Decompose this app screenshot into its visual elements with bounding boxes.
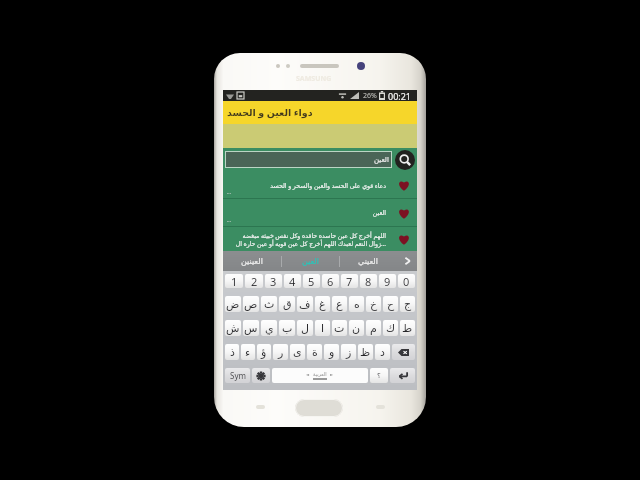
staticText: 6 [327, 274, 334, 288]
staticText: ك [386, 322, 396, 335]
button[interactable]: ع [332, 296, 347, 312]
staticText: خ [370, 298, 378, 311]
staticText: العين [372, 209, 386, 216]
button[interactable]: ◄ [272, 368, 368, 383]
staticText: ف [299, 298, 311, 311]
button[interactable]: 0 [398, 274, 415, 288]
staticText: 00:21 [388, 90, 412, 101]
staticText: ت [334, 322, 345, 335]
staticText: 4 [289, 274, 296, 288]
staticText: SAMSUNG [296, 74, 332, 84]
button[interactable]: ؤ [257, 344, 271, 360]
staticText: ن [352, 322, 361, 335]
button[interactable]: Enter [390, 368, 415, 383]
button[interactable]: س [243, 320, 259, 336]
staticText: ي [265, 322, 274, 335]
button[interactable]: ح [383, 296, 398, 312]
staticText: 9 [384, 274, 391, 288]
button[interactable]: و [324, 344, 339, 360]
button[interactable]: ر [273, 344, 288, 360]
button[interactable]: د [375, 344, 390, 360]
button[interactable]: 7 [341, 274, 358, 288]
staticText: ه [354, 298, 360, 311]
staticText: ش [226, 322, 240, 335]
staticText: ذ [230, 346, 235, 359]
button[interactable]: 1 [225, 274, 243, 288]
button[interactable]: ذ [225, 344, 239, 360]
button[interactable]: دواء العين و الحسد [223, 101, 417, 124]
button[interactable]: 6 [322, 274, 339, 288]
staticText: دعاء قوي على الحسد والعين والسحر و الحسد [270, 181, 386, 189]
button[interactable]: ي [261, 320, 277, 336]
staticText: ى [293, 346, 302, 359]
button[interactable]: ه [349, 296, 364, 312]
button[interactable]: ط [400, 320, 415, 336]
button[interactable]: ة [307, 344, 322, 360]
button[interactable]: ى [290, 344, 305, 360]
staticText: ع [336, 298, 343, 311]
staticText: ... [227, 217, 232, 224]
staticText: ق [283, 298, 292, 311]
button[interactable]: More suggestions [397, 251, 417, 271]
button[interactable]: ظ [358, 344, 373, 360]
button[interactable]: 2 [245, 274, 263, 288]
staticText: 1 [231, 274, 238, 288]
button[interactable]: م [366, 320, 381, 336]
button[interactable]: ؟ [370, 368, 388, 383]
button[interactable]: ش [225, 320, 241, 336]
staticText: Sym [230, 370, 246, 381]
button[interactable]: Settings [252, 368, 270, 383]
button[interactable]: 9 [379, 274, 396, 288]
button[interactable]: 4 [284, 274, 301, 288]
button[interactable]: ا [315, 320, 330, 336]
button[interactable]: العينين [223, 251, 281, 271]
staticText: م [370, 322, 377, 335]
staticText: العربية [313, 371, 327, 377]
button[interactable]: ت [332, 320, 347, 336]
button[interactable]: Sym [225, 368, 250, 383]
button[interactable]: ث [261, 296, 277, 312]
staticText: د [380, 346, 385, 359]
staticText: ج [404, 298, 412, 311]
button[interactable]: Backspace [392, 344, 415, 360]
staticText: ► [330, 372, 334, 377]
button[interactable]: خ [366, 296, 381, 312]
staticText: 8 [365, 274, 372, 288]
button[interactable]: ز [341, 344, 356, 360]
button[interactable]: 8 [360, 274, 377, 288]
button[interactable]: العين [223, 199, 417, 226]
button[interactable]: Search [395, 150, 415, 170]
staticText: ط [402, 322, 413, 335]
staticText: دواء العين و الحسد [227, 106, 313, 119]
staticText: ... [227, 189, 232, 196]
staticText: ص [244, 298, 258, 311]
button[interactable]: ص [243, 296, 259, 312]
button[interactable]: 3 [265, 274, 282, 288]
staticText: ز [346, 346, 352, 359]
staticText: 5 [308, 274, 315, 288]
button[interactable]: ك [383, 320, 398, 336]
other: Favorite [391, 171, 417, 198]
staticText: العيني [358, 257, 379, 266]
staticText: ض [226, 298, 240, 311]
button[interactable]: اللهم أخرج كل عين حاسده حاقده وكل نفس خب… [223, 227, 417, 251]
button[interactable]: ق [279, 296, 295, 312]
staticText: العين [302, 257, 320, 266]
button[interactable]: 5 [303, 274, 320, 288]
button[interactable]: العيني [340, 251, 397, 271]
staticText: 3 [270, 274, 277, 288]
button[interactable]: ب [279, 320, 295, 336]
button[interactable]: ء [241, 344, 255, 360]
button[interactable]: ن [349, 320, 364, 336]
button[interactable]: العين [282, 251, 339, 271]
button[interactable]: ج [400, 296, 415, 312]
staticText: ؟ [377, 372, 381, 380]
button[interactable]: ل [297, 320, 313, 336]
staticText: 26% [363, 91, 377, 101]
button[interactable]: دعاء قوي على الحسد والعين والسحر و الحسد [223, 171, 417, 198]
button[interactable]: ض [225, 296, 241, 312]
staticText: س [244, 322, 258, 335]
button[interactable]: غ [315, 296, 330, 312]
button[interactable]: ف [297, 296, 313, 312]
staticText: ؤ [261, 346, 267, 359]
